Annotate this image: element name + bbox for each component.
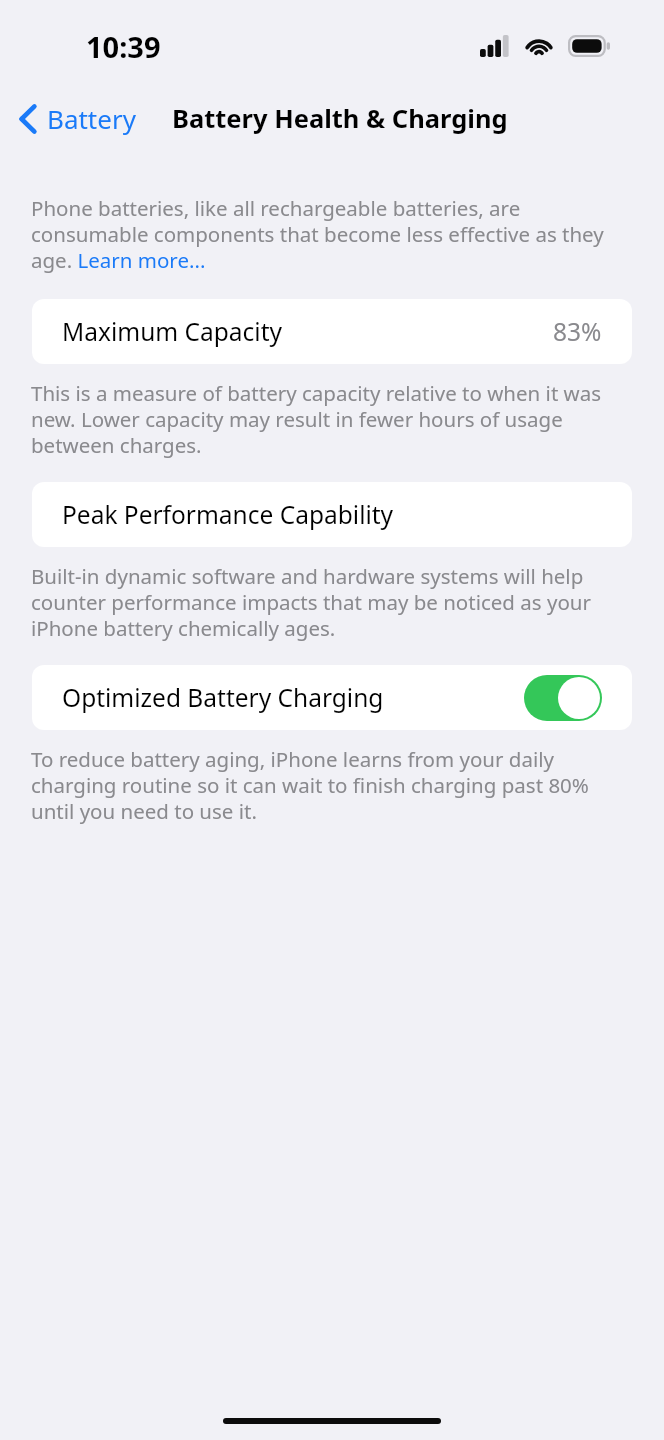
staticText: Peak Performance Capability [62,498,394,531]
staticText: Battery Health & Charging [172,101,508,136]
staticText: Built-in dynamic software and hardware s… [31,562,626,642]
other: Back [18,102,38,136]
staticText: Maximum Capacity [62,315,283,348]
staticText: This is a measure of battery capacity re… [31,379,626,459]
staticText: Battery [47,101,136,136]
button[interactable]: Peak Performance Capability [32,482,632,547]
button[interactable]: Optimized Battery Charging toggle [524,675,602,721]
staticText: 10:39 [86,27,161,66]
staticText: 83% [553,315,602,348]
button[interactable]: Maximum Capacity [32,299,632,364]
staticText: Phone batteries, like all rechargeable b… [31,194,630,274]
button[interactable]: Back [0,95,144,142]
staticText: Optimized Battery Charging [62,681,384,714]
staticText: To reduce battery aging, iPhone learns f… [31,745,626,825]
